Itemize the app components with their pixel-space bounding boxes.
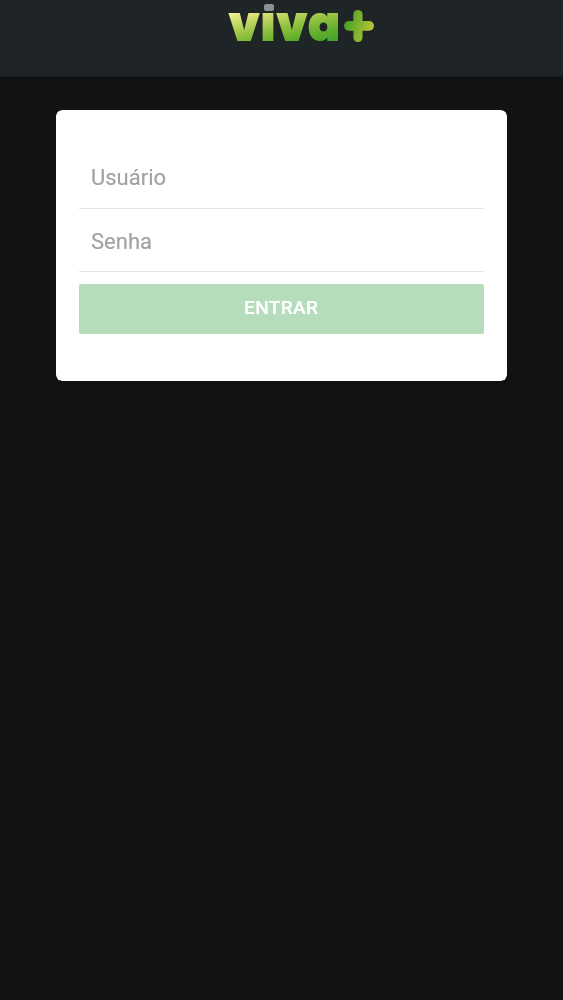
button[interactable]: ENTRAR	[79, 284, 484, 334]
button[interactable]: Usuário	[79, 165, 484, 208]
staticText: Usuário	[91, 165, 167, 191]
button[interactable]: Senha	[79, 229, 484, 272]
staticText: Senha	[91, 229, 152, 255]
staticText: viva	[228, 0, 341, 51]
staticText: ENTRAR	[244, 296, 319, 318]
other: viva+	[228, 0, 374, 60]
